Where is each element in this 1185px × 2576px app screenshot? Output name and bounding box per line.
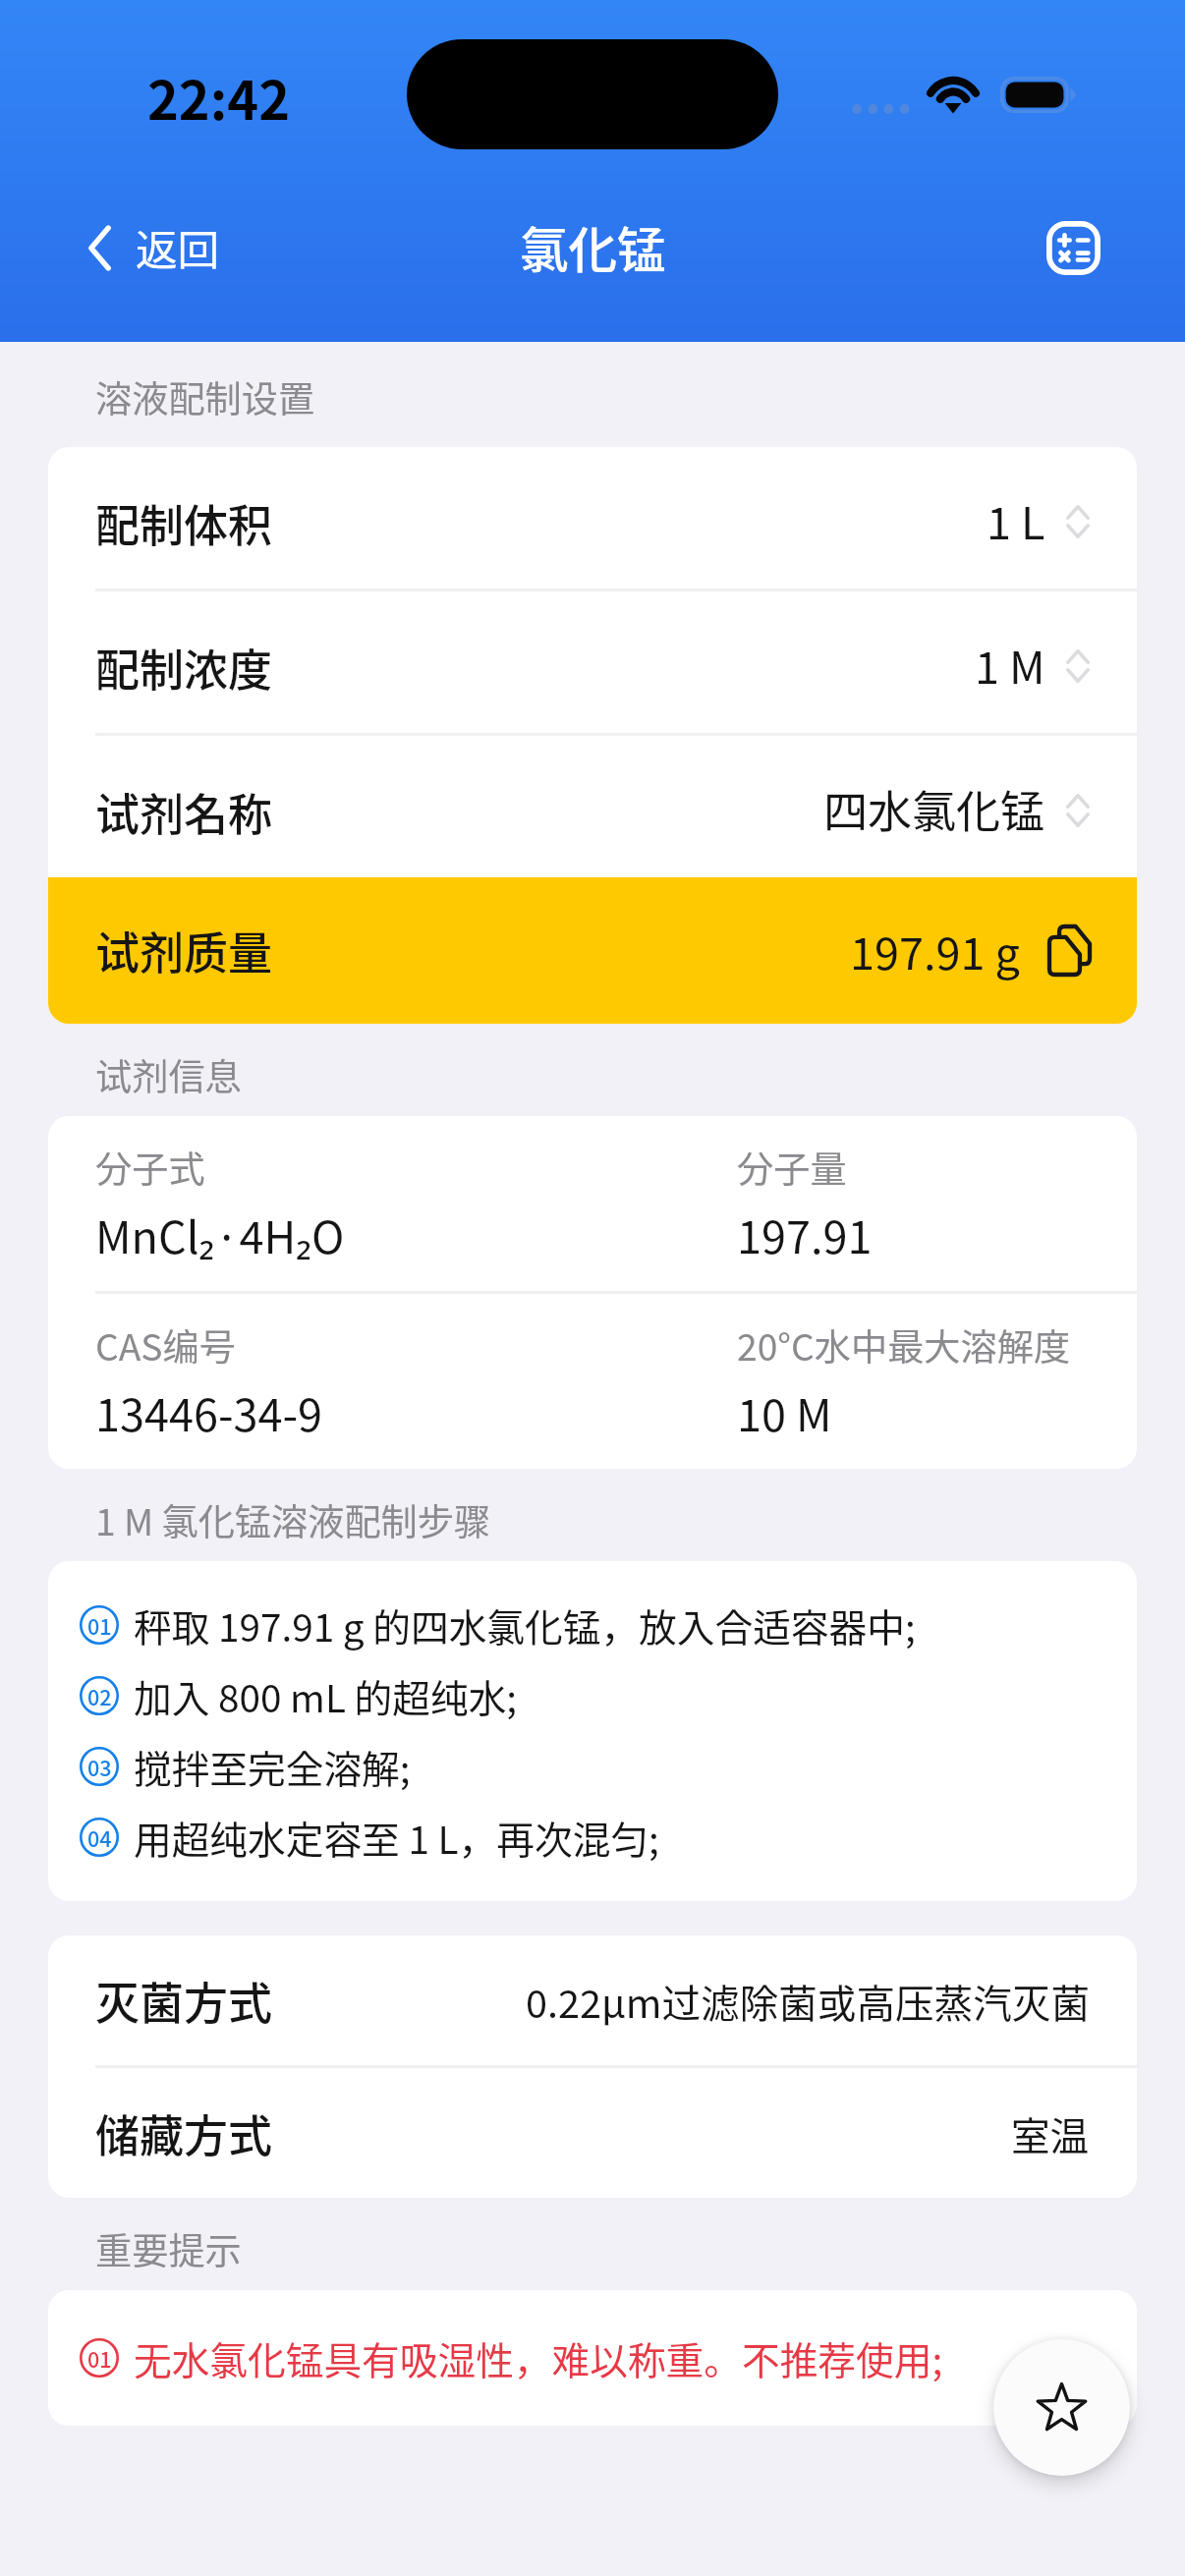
staticText: 试剂质量 xyxy=(95,919,273,982)
staticText: 01 xyxy=(87,2343,112,2374)
staticText: MnCl₂·4H₂O xyxy=(95,1203,345,1266)
staticText: 分子量 xyxy=(737,1141,847,1194)
staticText: 重要提示 xyxy=(95,2222,242,2275)
button[interactable]: Favorite xyxy=(993,2339,1130,2476)
staticText: 1 M xyxy=(975,633,1045,697)
staticText: 配制体积 xyxy=(95,491,273,555)
staticText: 返回 xyxy=(136,217,220,278)
staticText: 溶液配制设置 xyxy=(95,370,315,423)
staticText: 197.91 xyxy=(737,1203,873,1266)
staticText: 储藏方式 xyxy=(95,2101,273,2165)
staticText: 02 xyxy=(87,1681,112,1711)
button[interactable]: 返回 xyxy=(50,196,261,299)
staticText: 13446-34-9 xyxy=(95,1380,323,1444)
staticText: 10 M xyxy=(737,1380,832,1444)
button[interactable]: 配制体积 xyxy=(48,447,1137,588)
staticText: 04 xyxy=(87,1822,112,1853)
staticText: 197.91 g xyxy=(850,919,1020,982)
staticText: 搅拌至完全溶解; xyxy=(134,1739,411,1794)
staticText: 03 xyxy=(87,1752,112,1782)
staticText: 22:42 xyxy=(147,58,290,135)
staticText: 用超纯水定容至 1 L，再次混匀; xyxy=(134,1810,659,1865)
button[interactable]: 试剂名称 xyxy=(48,736,1137,877)
staticText: 无水氯化锰具有吸湿性，难以称重。不推荐使用; xyxy=(134,2330,943,2385)
staticText: 20°C水中最大溶解度 xyxy=(737,1318,1071,1372)
staticText: 1 L xyxy=(987,488,1045,552)
staticText: 试剂名称 xyxy=(95,780,273,844)
staticText: 秤取 197.91 g 的四水氯化锰，放入合适容器中; xyxy=(134,1597,916,1652)
staticText: 配制浓度 xyxy=(95,636,273,700)
staticText: 1 M 氯化锰溶液配制步骤 xyxy=(95,1493,491,1546)
staticText: 试剂信息 xyxy=(95,1048,242,1101)
staticText: 0.22μm过滤除菌或高压蒸汽灭菌 xyxy=(526,1973,1090,2029)
staticText: 四水氯化锰 xyxy=(823,777,1045,841)
button[interactable]: 配制浓度 xyxy=(48,591,1137,733)
staticText: 分子式 xyxy=(95,1141,205,1194)
button[interactable]: 试剂质量 xyxy=(48,877,1137,1024)
button[interactable]: Calculator xyxy=(1014,189,1132,307)
staticText: 氯化锰 xyxy=(520,212,666,283)
staticText: 室温 xyxy=(1011,2105,1090,2161)
staticText: 加入 800 mL 的超纯水; xyxy=(134,1668,518,1723)
staticText: 灭菌方式 xyxy=(95,1969,273,2033)
staticText: 01 xyxy=(87,1610,112,1641)
staticText: CAS编号 xyxy=(95,1318,236,1372)
